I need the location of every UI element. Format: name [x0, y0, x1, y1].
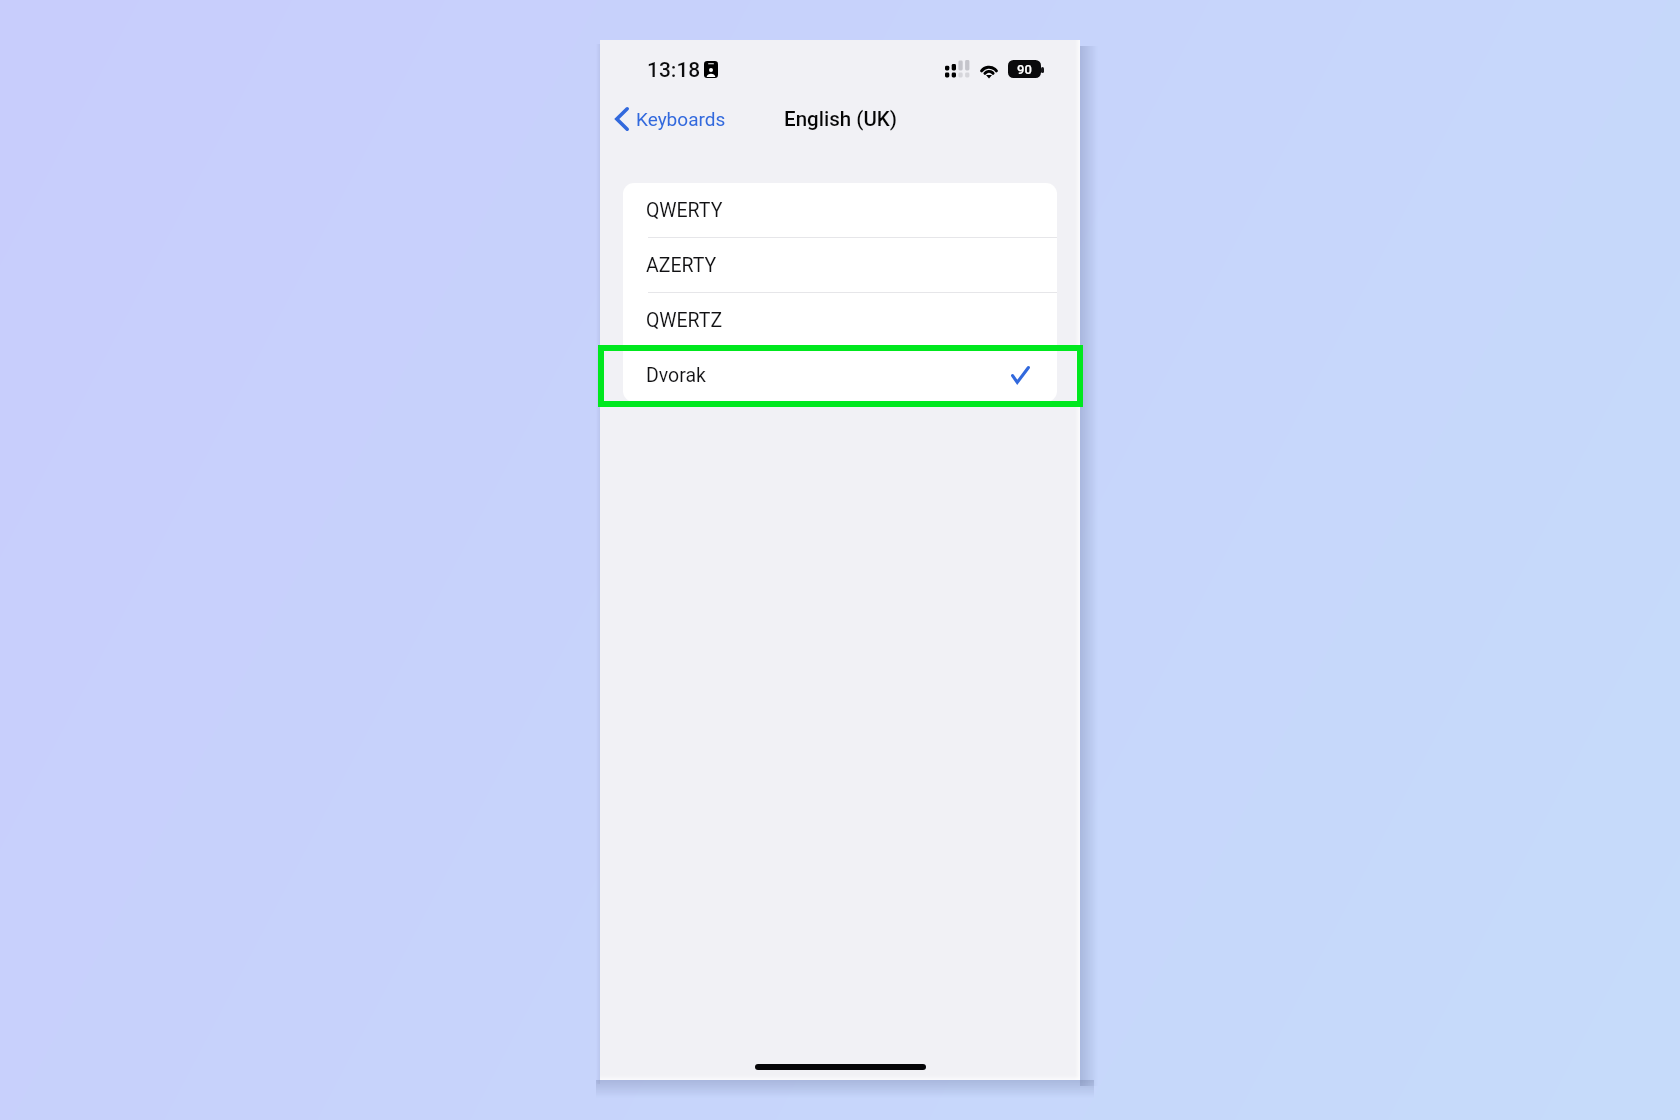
- staticText: 13:18: [647, 58, 701, 83]
- button[interactable]: QWERTZ: [623, 293, 1057, 347]
- staticText: QWERTY: [646, 199, 723, 222]
- button[interactable]: Keyboards: [609, 97, 732, 141]
- staticText: QWERTZ: [646, 309, 723, 332]
- other: Cellular signal: [945, 60, 970, 79]
- other: Selected: [1011, 366, 1030, 384]
- staticText: AZERTY: [646, 254, 717, 277]
- button[interactable]: Dvorak: [623, 348, 1057, 402]
- staticText: English (UK): [784, 107, 897, 131]
- staticText: Dvorak: [646, 364, 706, 387]
- staticText: Keyboards: [636, 108, 726, 130]
- staticText: 90: [1017, 62, 1032, 77]
- button[interactable]: AZERTY: [623, 238, 1057, 292]
- other: Battery 90 percent: [1008, 60, 1041, 78]
- other: Wi-Fi: [978, 61, 1001, 78]
- button[interactable]: QWERTY: [623, 183, 1057, 237]
